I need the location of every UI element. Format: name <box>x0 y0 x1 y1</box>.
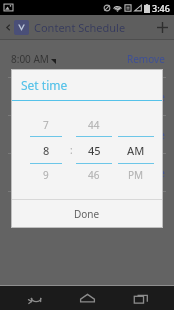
staticText: AM <box>127 143 145 158</box>
button[interactable]: 8:00 AM <box>0 40 174 77</box>
button[interactable]: 8:45 AM <box>0 78 174 115</box>
staticText: PM <box>128 168 144 182</box>
button[interactable]: Remove <box>118 86 174 108</box>
button[interactable]: 9:30 AM <box>0 154 174 191</box>
staticText: 8:45 AM <box>11 90 49 104</box>
staticText: 8 <box>43 143 50 158</box>
staticText: 3:46 <box>152 2 170 14</box>
staticText: : <box>70 143 73 157</box>
staticText: Remove <box>127 52 165 66</box>
button[interactable]: 8 <box>30 137 62 163</box>
button[interactable]: Remove <box>118 162 174 184</box>
staticText: 44 <box>88 118 100 132</box>
staticText: 8:00 AM <box>11 52 49 66</box>
staticText: 46 <box>88 168 100 182</box>
staticText: Remove <box>127 128 165 142</box>
button[interactable]: Back <box>2 21 14 33</box>
button[interactable]: Remove <box>118 124 174 146</box>
staticText: 7 <box>43 118 49 132</box>
button[interactable]: Home <box>67 286 107 310</box>
button[interactable]: 9:00 AM <box>0 116 174 153</box>
staticText: Remove <box>127 166 165 180</box>
button[interactable]: Recent apps <box>121 286 161 310</box>
button[interactable]: Done <box>12 200 162 227</box>
staticText: Content Schedule <box>34 20 126 35</box>
staticText: Done <box>74 207 100 221</box>
staticText: 9:30 AM <box>11 166 49 180</box>
staticText: Remove <box>127 90 165 104</box>
staticText: 9:00 AM <box>11 128 49 142</box>
button[interactable]: Add <box>150 15 174 39</box>
button[interactable]: 45 <box>76 137 112 163</box>
staticText: 9 <box>43 168 49 182</box>
button[interactable]: AM <box>118 137 154 163</box>
staticText: Set time <box>21 77 68 93</box>
staticText: 45 <box>88 143 101 158</box>
button[interactable]: Remove <box>118 48 174 70</box>
button[interactable]: Back <box>14 286 54 310</box>
